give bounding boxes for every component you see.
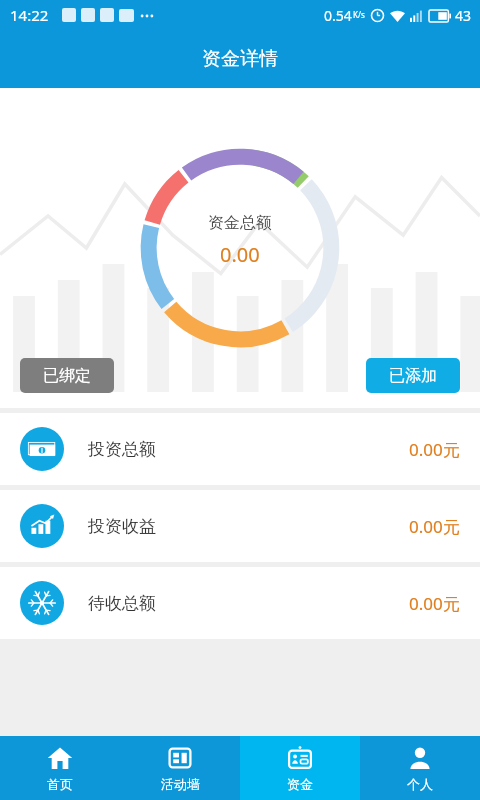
staticText: 首页 xyxy=(47,776,73,792)
staticText: 个人 xyxy=(407,776,433,792)
staticText: 0.00元 xyxy=(409,515,460,538)
button[interactable]: 活动墙 xyxy=(120,736,240,800)
staticText: 0.00元 xyxy=(409,438,460,461)
other: 资金 xyxy=(287,745,313,771)
staticText: 14:22 xyxy=(10,5,49,25)
staticText: 资金总额 xyxy=(208,213,272,233)
button[interactable]: 首页 xyxy=(0,736,120,800)
button[interactable]: 投资收益 xyxy=(0,490,480,562)
staticText: K/s xyxy=(353,9,365,20)
staticText: 资金 xyxy=(287,776,313,792)
staticText: 投资总额 xyxy=(88,439,156,460)
button[interactable]: 已添加 xyxy=(366,358,460,393)
staticText: 43 xyxy=(455,6,472,25)
staticText: 已绑定 xyxy=(43,366,91,386)
staticText: 投资收益 xyxy=(88,516,156,537)
button[interactable]: 个人 xyxy=(360,736,480,800)
staticText: 0.00 xyxy=(220,241,260,268)
staticText: 已添加 xyxy=(389,366,437,386)
button[interactable]: 投资总额 xyxy=(0,413,480,485)
button[interactable]: 待收总额 xyxy=(0,567,480,639)
staticText: 0.00元 xyxy=(409,592,460,615)
button[interactable]: 已绑定 xyxy=(20,358,114,393)
staticText: 活动墙 xyxy=(161,776,200,792)
staticText: 资金详情 xyxy=(202,47,278,71)
button[interactable]: 资金 xyxy=(240,736,360,800)
staticText: 0.54 xyxy=(324,6,352,25)
staticText: 待收总额 xyxy=(88,593,156,614)
